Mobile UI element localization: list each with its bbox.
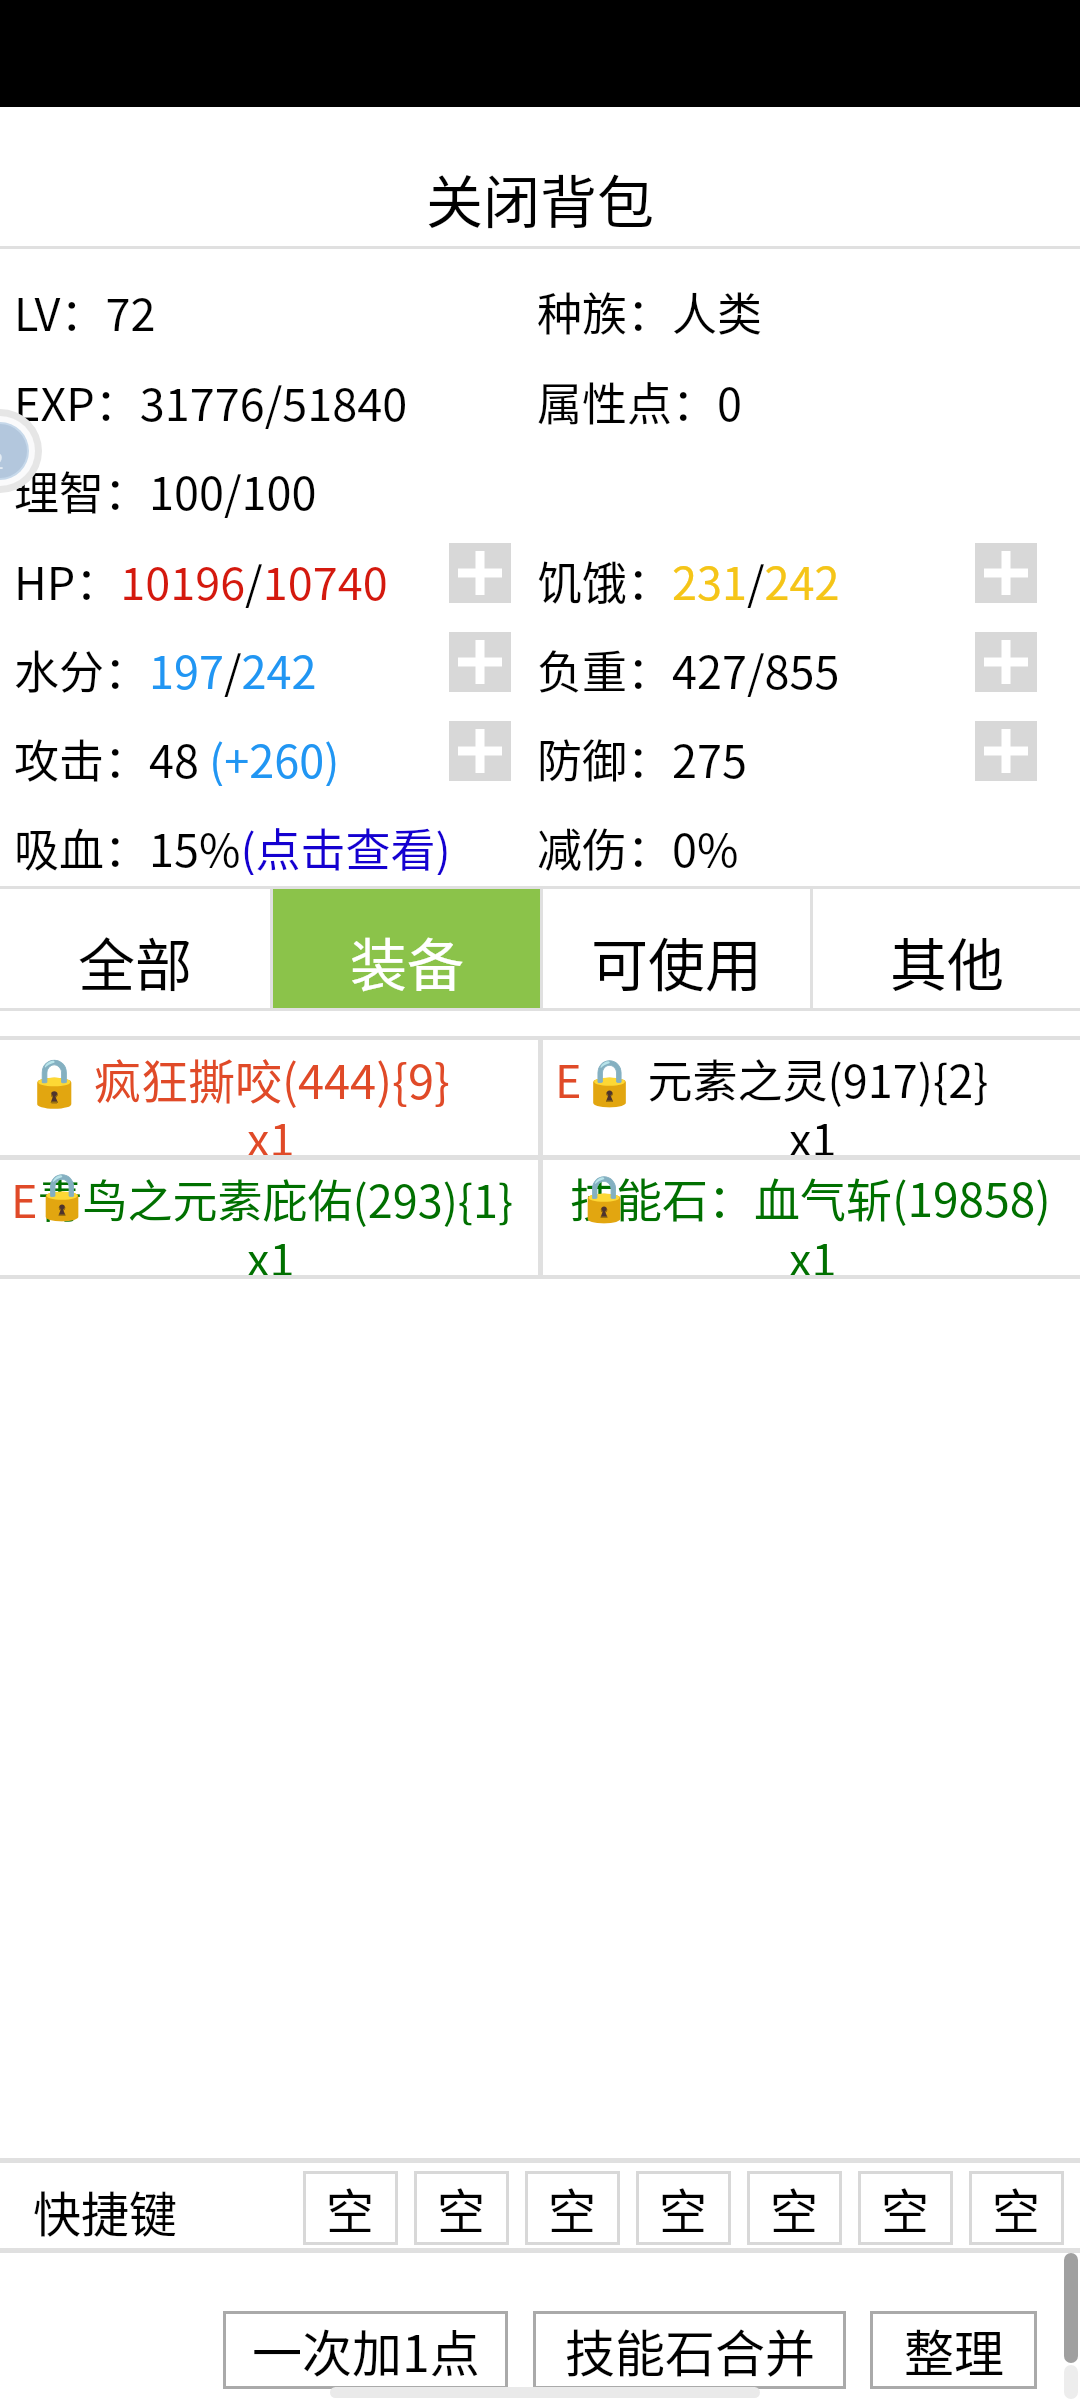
button[interactable]: 关闭背包: [0, 107, 1080, 246]
button[interactable]: Increase: [975, 543, 1037, 603]
button[interactable]: 空: [747, 2171, 842, 2245]
button[interactable]: 装备: [273, 889, 540, 1008]
staticText: 整理: [904, 2314, 1004, 2386]
staticText: 一次加1点: [252, 2314, 480, 2386]
staticText: 理智：100/100: [14, 458, 317, 518]
button[interactable]: [0, 1040, 538, 1155]
staticText: E🔒 元素之灵(917){2}: [555, 1046, 989, 1111]
staticText: 空: [770, 2173, 819, 2243]
staticText: 攻击：48 (+260): [14, 726, 340, 786]
staticText: 空: [881, 2173, 930, 2243]
button[interactable]: 空: [858, 2171, 953, 2245]
button[interactable]: 其他: [813, 889, 1080, 1008]
button[interactable]: 技能石合并: [533, 2311, 846, 2389]
staticText: E青鸟之元素庇佑(293){1}: [11, 1166, 514, 1231]
staticText: 水分：197/242: [14, 637, 317, 697]
staticText: 🔒: [34, 1170, 91, 1223]
staticText: 🔒 疯狂撕咬(444){9}: [25, 1044, 450, 1112]
button[interactable]: Increase: [975, 721, 1037, 781]
staticText: 空: [548, 2173, 597, 2243]
staticText: 可使用: [591, 920, 762, 1003]
button[interactable]: 空: [525, 2171, 620, 2245]
staticText: 快捷键: [33, 2176, 178, 2246]
staticText: HP：10196/10740: [14, 548, 388, 608]
button[interactable]: 一次加1点: [223, 2311, 508, 2389]
staticText: 全部: [78, 920, 192, 1003]
staticText: 22: [0, 443, 4, 475]
button[interactable]: 整理: [870, 2311, 1037, 2389]
staticText: 空: [992, 2173, 1041, 2243]
staticText: x1: [789, 1104, 837, 1169]
staticText: 空: [659, 2173, 708, 2243]
button[interactable]: [0, 1160, 538, 1275]
staticText: 减伤：0%: [537, 815, 739, 875]
staticText: 属性点：0: [537, 369, 742, 429]
staticText: 🔒: [576, 1172, 633, 1225]
staticText: EXP：31776/51840: [14, 369, 408, 429]
staticText: 负重：427/855: [537, 637, 840, 697]
button[interactable]: 可使用: [543, 889, 810, 1008]
staticText: 饥饿：231/242: [537, 548, 840, 608]
staticText: 防御：275: [537, 726, 747, 786]
button[interactable]: 空: [636, 2171, 731, 2245]
button[interactable]: Quick menu: [0, 408, 43, 494]
button[interactable]: [542, 1040, 1080, 1155]
button[interactable]: 全部: [0, 889, 270, 1008]
staticText: 关闭背包: [426, 157, 654, 240]
staticText: LV：72: [14, 279, 156, 339]
staticText: x1: [247, 1224, 295, 1279]
staticText: 空: [326, 2173, 375, 2243]
staticText: 装备: [350, 920, 464, 1003]
button[interactable]: Increase: [449, 632, 511, 692]
button[interactable]: 空: [303, 2171, 398, 2245]
staticText: 种族：人类: [537, 279, 763, 339]
staticText: 其他: [890, 920, 1004, 1003]
staticText: 空: [437, 2173, 486, 2243]
staticText: 技能石合并: [565, 2314, 815, 2386]
button[interactable]: Increase: [449, 721, 511, 781]
button[interactable]: [542, 1160, 1080, 1275]
button[interactable]: Increase: [975, 632, 1037, 692]
staticText: x1: [247, 1104, 295, 1169]
button[interactable]: 空: [414, 2171, 509, 2245]
button[interactable]: 空: [969, 2171, 1064, 2245]
button[interactable]: Increase: [449, 543, 511, 603]
staticText: 技能石：血气斩(19858): [570, 1164, 1051, 1231]
staticText: 吸血：15%(点击查看): [14, 815, 451, 875]
staticText: x1: [789, 1224, 837, 1279]
